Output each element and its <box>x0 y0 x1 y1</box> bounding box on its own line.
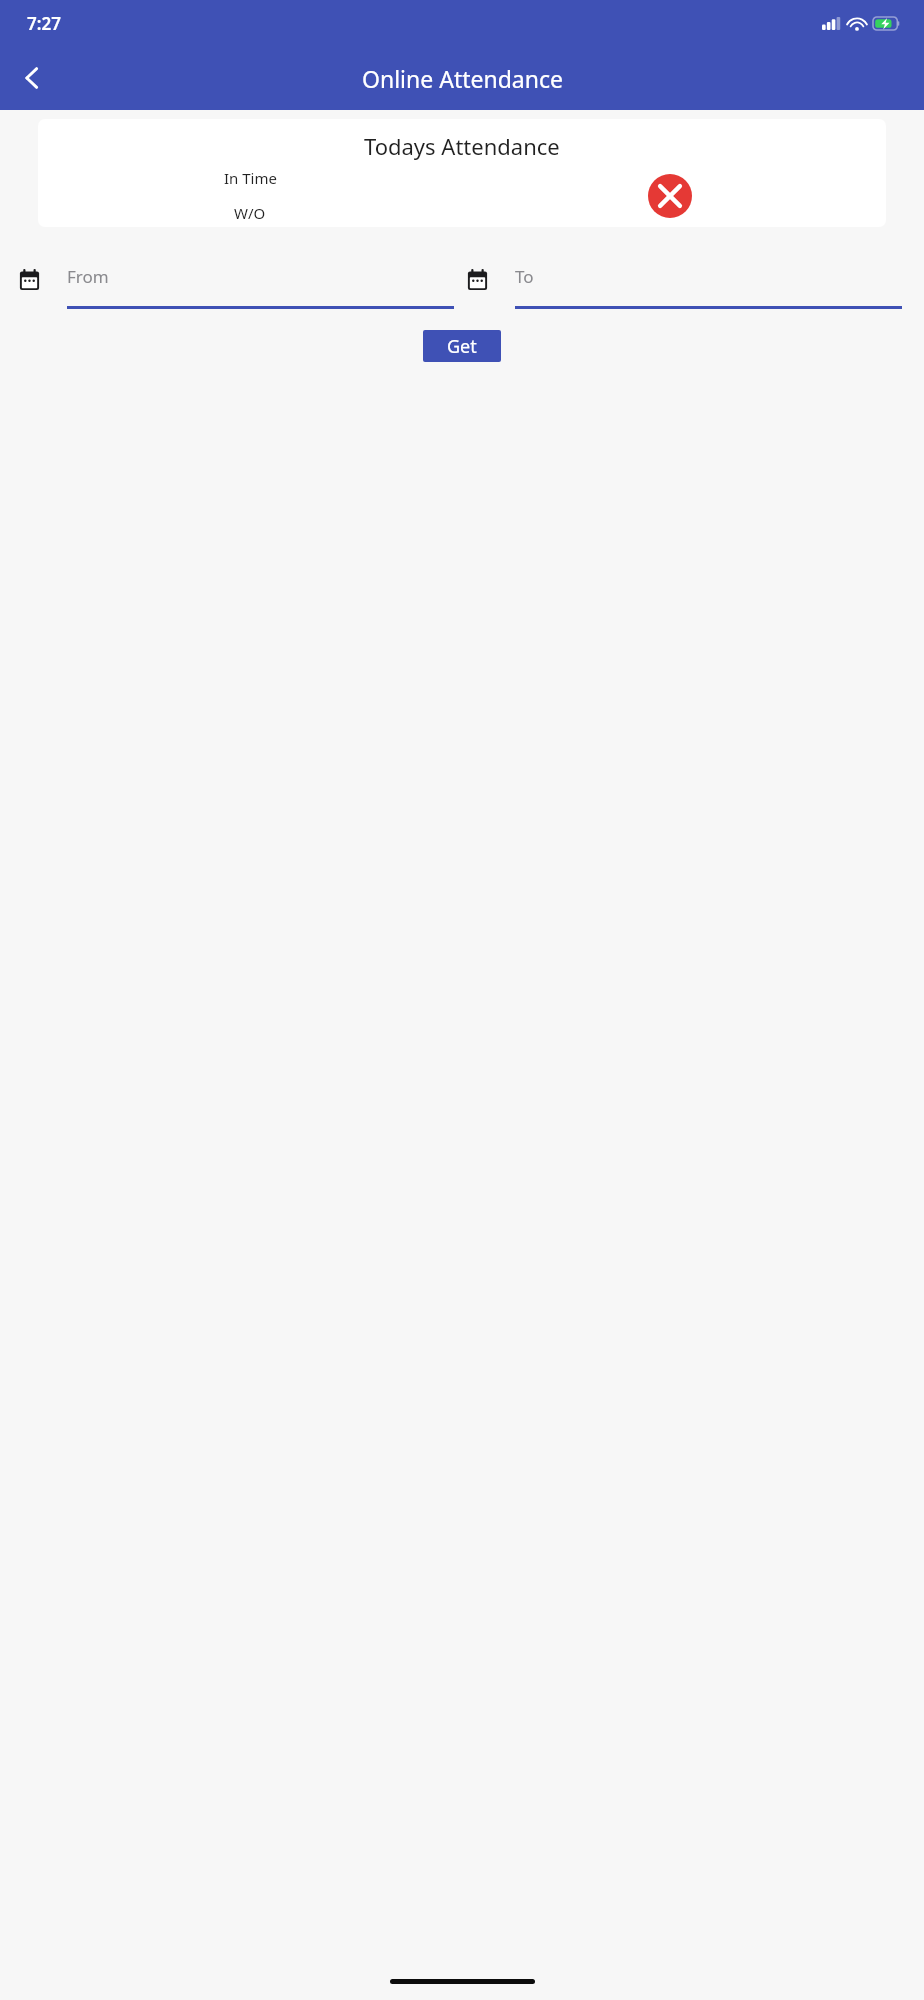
staticText: Todays Attendance <box>364 131 560 161</box>
button[interactable]: Get <box>423 330 501 362</box>
button[interactable]: From <box>14 265 462 309</box>
staticText: 7:27 <box>27 12 61 35</box>
staticText: W/O <box>234 203 266 223</box>
staticText: Get <box>447 334 477 359</box>
button[interactable]: To <box>462 265 910 309</box>
button[interactable]: Todays Attendance <box>38 119 886 227</box>
staticText: To <box>515 265 534 288</box>
staticText: Online Attendance <box>362 63 563 94</box>
button[interactable]: Back <box>8 54 56 102</box>
staticText: In Time <box>224 168 277 188</box>
staticText: From <box>67 265 109 288</box>
